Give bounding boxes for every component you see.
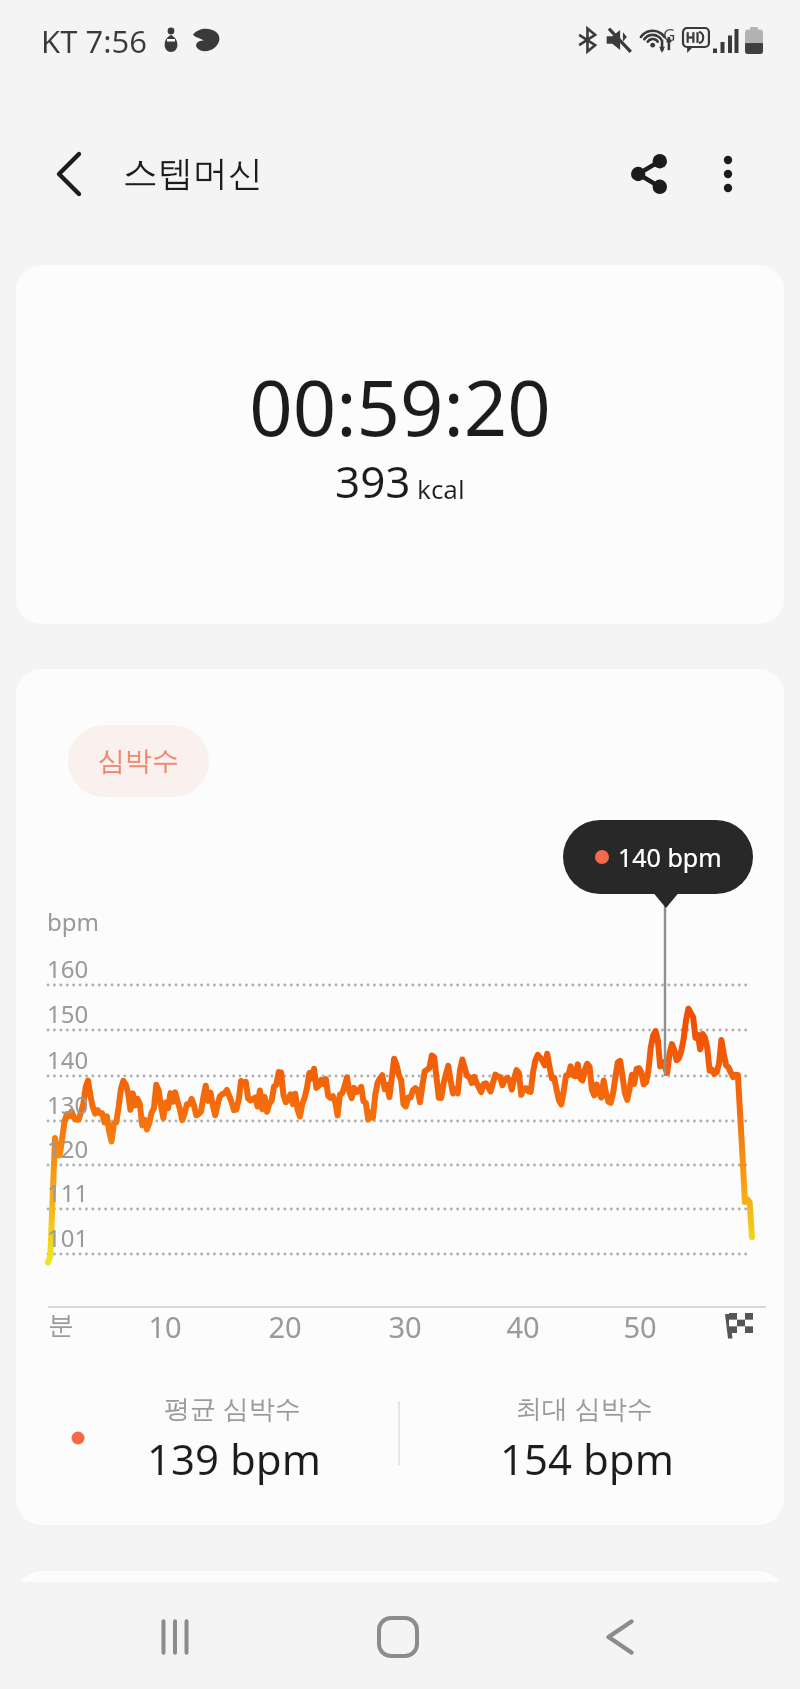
staticText: 30	[365, 1307, 445, 1346]
button[interactable]	[16, 1571, 784, 1601]
staticText: 00:59:20	[16, 355, 784, 459]
staticText: 130	[47, 1088, 89, 1121]
staticText: KT 7:56	[41, 20, 147, 62]
staticText: G	[663, 23, 676, 46]
staticText: 분	[48, 1309, 74, 1342]
button[interactable]: Home	[358, 1597, 438, 1677]
staticText: 120	[47, 1132, 89, 1165]
button[interactable]: Back	[28, 133, 110, 215]
staticText: bpm	[47, 905, 99, 938]
staticText: 심박수	[98, 744, 179, 778]
button[interactable]: Back	[580, 1597, 660, 1677]
staticText: 40	[483, 1307, 563, 1346]
button[interactable]: 심박수	[68, 725, 209, 797]
staticText: 최대 심박수	[516, 1390, 653, 1426]
button[interactable]: More options	[687, 133, 769, 215]
staticText: kcal	[417, 471, 465, 506]
staticText: 160	[47, 952, 89, 985]
staticText: 111	[47, 1176, 89, 1209]
staticText: 50	[600, 1307, 680, 1346]
button[interactable]: 00:59:20	[16, 265, 784, 624]
staticText: 140 bpm	[618, 840, 722, 874]
button[interactable]: 140 bpm	[563, 820, 753, 894]
staticText: 101	[47, 1221, 89, 1254]
button[interactable]: Recent apps	[135, 1597, 215, 1677]
button[interactable]: Share	[608, 133, 690, 215]
staticText: 154 bpm	[500, 1430, 674, 1487]
staticText: 139 bpm	[147, 1430, 321, 1487]
staticText: 20	[245, 1307, 325, 1346]
staticText: 150	[47, 997, 89, 1030]
staticText: 평균 심박수	[164, 1390, 301, 1426]
staticText: 10	[125, 1307, 205, 1346]
staticText: 140	[47, 1043, 89, 1076]
staticText: 스텝머신	[123, 151, 263, 195]
staticText: 393	[335, 451, 411, 511]
